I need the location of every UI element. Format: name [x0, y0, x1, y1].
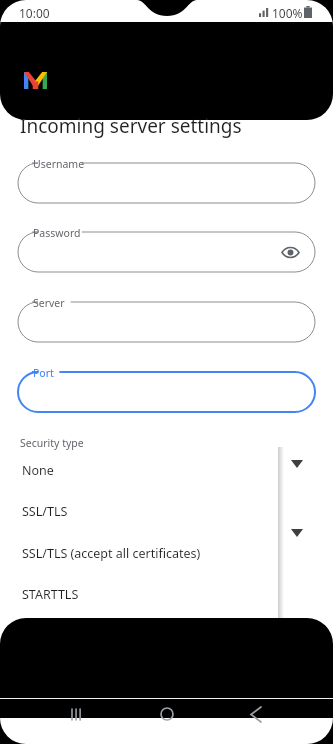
button[interactable]: Password	[18, 232, 315, 272]
button[interactable]: Home	[153, 700, 181, 728]
staticText: 10:00	[19, 5, 50, 21]
button[interactable]: Recents	[63, 700, 91, 728]
button[interactable]: SSL/TLS	[13, 491, 278, 532]
button[interactable]: Server	[18, 302, 315, 342]
button[interactable]: Show password	[278, 240, 302, 264]
staticText: 100%	[272, 5, 303, 21]
staticText: Security type	[20, 436, 84, 450]
button[interactable]: Port	[18, 372, 315, 412]
staticText: Username	[33, 157, 85, 171]
staticText: Port	[33, 366, 54, 380]
button[interactable]: STARTTLS	[13, 574, 278, 615]
staticText: SSL/TLS (accept all certificates)	[22, 545, 201, 562]
button[interactable]: STARTTLS (accept all certificates)	[13, 615, 278, 656]
staticText: Incoming server settings	[20, 113, 242, 139]
staticText: None	[22, 462, 54, 479]
staticText: STARTTLS	[22, 586, 79, 603]
staticText: SSL/TLS	[22, 503, 68, 520]
button[interactable]: Back	[242, 700, 270, 728]
button[interactable]: None	[13, 450, 278, 491]
button[interactable]: SSL/TLS (accept all certificates)	[13, 533, 278, 574]
staticText: Password	[33, 226, 81, 240]
button[interactable]: Username	[18, 163, 315, 203]
staticText: Server	[33, 296, 65, 310]
